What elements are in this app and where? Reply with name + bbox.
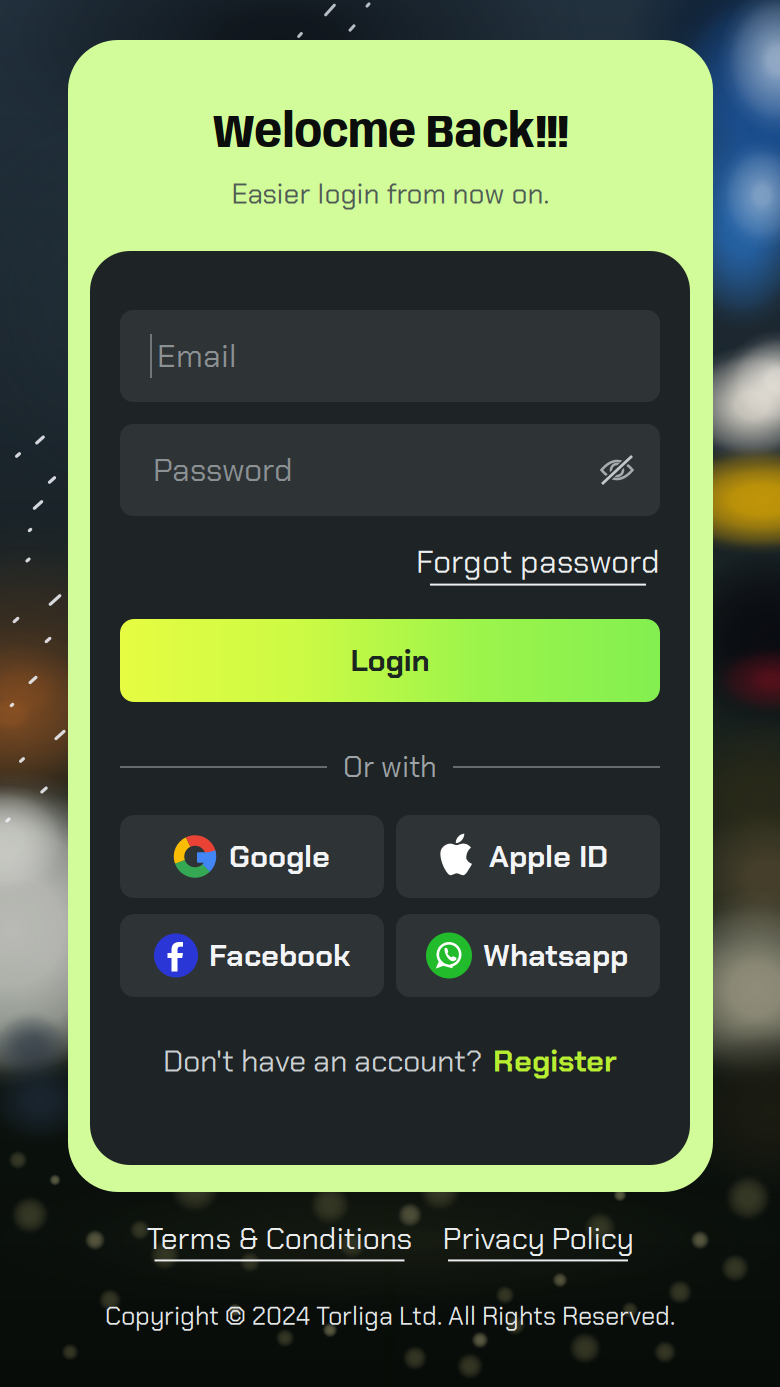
button[interactable]: Whatsapp: [396, 914, 660, 997]
button[interactable]: Facebook: [120, 914, 384, 997]
staticText: Login: [350, 641, 429, 680]
button[interactable]: Apple ID: [396, 815, 660, 898]
staticText: Don't have an account?: [163, 1041, 482, 1081]
button[interactable]: Login: [120, 619, 660, 702]
staticText: Password: [153, 449, 293, 491]
button[interactable]: Terms & Conditions: [146, 1219, 412, 1261]
button[interactable]: Forgot password: [416, 541, 660, 586]
button[interactable]: Privacy Policy: [442, 1219, 633, 1261]
staticText: Facebook: [209, 936, 350, 975]
staticText: Whatsapp: [483, 936, 628, 975]
staticText: Privacy Policy: [442, 1219, 633, 1258]
staticText: Google: [229, 837, 330, 876]
button[interactable]: Google: [120, 815, 384, 898]
staticText: Easier login from now on.: [231, 176, 549, 212]
staticText: Apple ID: [489, 837, 608, 876]
staticText: Register: [493, 1041, 617, 1081]
staticText: Copyright © 2024 Torliga Ltd. All Rights…: [105, 1299, 675, 1332]
staticText: Email: [157, 335, 236, 377]
staticText: Forgot password: [416, 541, 660, 583]
staticText: Or with: [343, 748, 437, 786]
staticText: Welocme Back!!!: [212, 110, 568, 158]
staticText: Terms & Conditions: [146, 1219, 412, 1258]
button[interactable]: Register: [493, 1041, 617, 1081]
